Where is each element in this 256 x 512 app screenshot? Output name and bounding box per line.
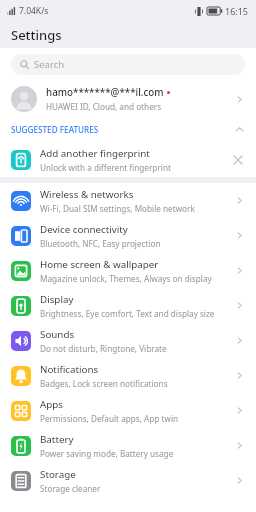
button[interactable]: Dismiss suggestion [231,153,245,167]
button[interactable]: hamo*******@***il.com [0,81,256,117]
staticText: Notifications [40,363,99,376]
staticText: Permissions, Default apps, App twin [40,413,179,424]
staticText: Display [40,293,74,306]
button[interactable]: Sounds [0,323,256,358]
staticText: 7.04K/s [19,5,49,17]
staticText: Wireless & networks [40,188,134,201]
staticText: Do not disturb, Ringtone, Vibrate [40,343,167,354]
staticText: Home screen & wallpaper [40,258,159,271]
button[interactable]: Storage [0,463,256,498]
button[interactable]: Wireless & networks [0,183,256,218]
other: Collapse suggested features [234,124,245,135]
staticText: SUGGESTED FEATURES [11,124,99,135]
button[interactable]: Notifications [0,358,256,393]
staticText: Sounds [40,328,75,341]
staticText: 16:15 [225,5,249,17]
staticText: Power saving mode, Battery usage [40,448,174,459]
button[interactable]: Home screen & wallpaper [0,253,256,288]
staticText: Magazine unlock, Themes, Always on displ… [40,273,212,284]
button[interactable]: Add another fingerprint [0,142,256,177]
staticText: Brightness, Eye comfort, Text and displa… [40,308,215,319]
staticText: Storage cleaner [40,483,101,494]
staticText: Device connectivity [40,223,128,236]
button[interactable]: Battery [0,428,256,463]
staticText: Add another fingerprint [40,147,150,160]
button[interactable]: Apps [0,393,256,428]
staticText: Search [34,58,65,71]
staticText: Unlock with a different fingerprint [40,162,171,173]
staticText: Badges, Lock screen notifications [40,378,168,389]
staticText: Settings [11,26,62,44]
staticText: Storage [40,468,76,481]
staticText: hamo*******@***il.com [46,86,164,99]
staticText: Battery [40,433,74,446]
staticText: HUAWEI ID, Cloud, and others [46,101,162,112]
staticText: Apps [40,398,64,411]
button[interactable]: Display [0,288,256,323]
button[interactable]: Device connectivity [0,218,256,253]
staticText: Bluetooth, NFC, Easy projection [40,238,161,249]
button[interactable]: Search [11,54,245,75]
staticText: Wi-Fi, Dual SIM settings, Mobile network [40,203,195,214]
button[interactable]: SUGGESTED FEATURES [0,117,256,142]
